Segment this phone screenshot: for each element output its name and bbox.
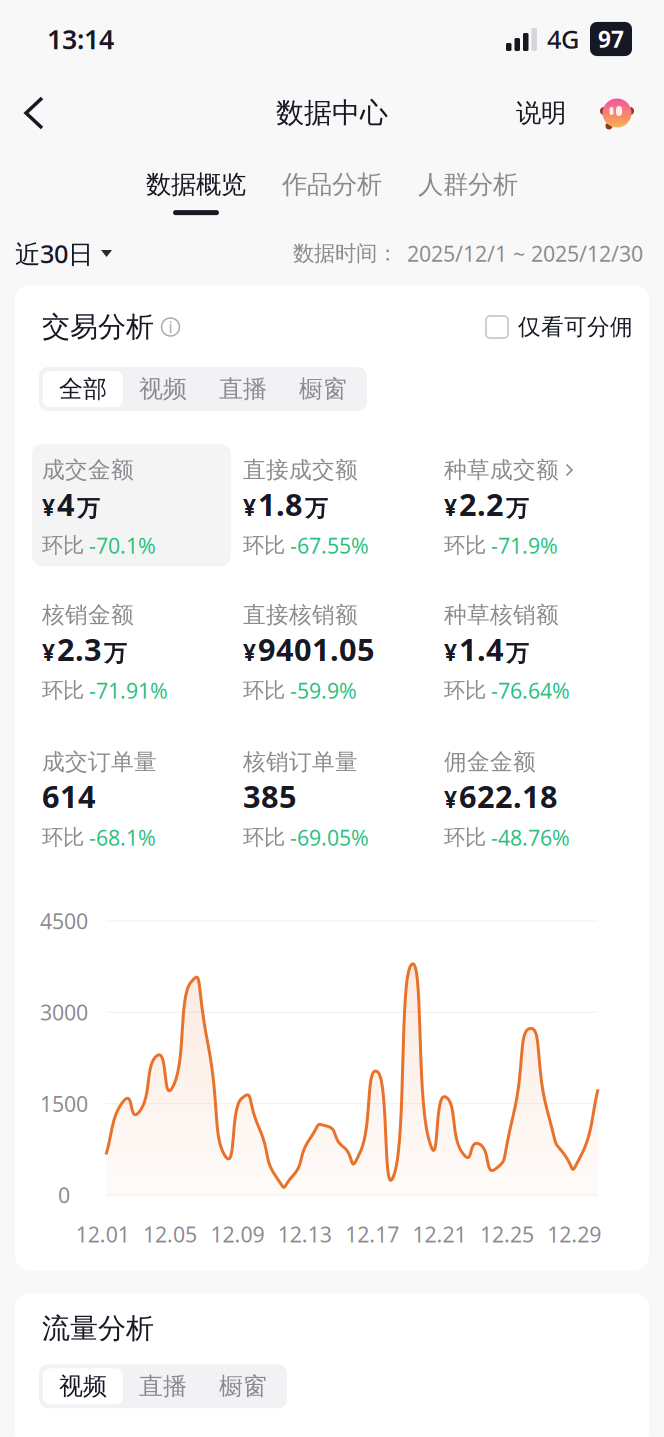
staticText: 97 bbox=[598, 24, 624, 54]
button[interactable]: 橱窗 bbox=[203, 1368, 283, 1404]
staticText: 622.18 bbox=[459, 776, 558, 816]
staticText: 直接核销额 bbox=[243, 601, 358, 629]
button[interactable]: 直播 bbox=[123, 1368, 203, 1404]
staticText: 视频 bbox=[139, 374, 187, 404]
staticText: 12.05 bbox=[143, 1220, 197, 1248]
staticText: 万 bbox=[305, 494, 328, 522]
staticText: 12.29 bbox=[547, 1220, 601, 1248]
staticText: ¥ bbox=[444, 492, 457, 522]
button[interactable]: 说明 bbox=[516, 86, 566, 139]
staticText: 9401.05 bbox=[258, 629, 375, 669]
staticText: 614 bbox=[42, 776, 96, 816]
staticText: -70.1% bbox=[89, 531, 156, 560]
staticText: 直播 bbox=[139, 1372, 187, 1401]
staticText: 作品分析 bbox=[282, 169, 382, 200]
staticText: 12.01 bbox=[76, 1220, 130, 1248]
staticText: 385 bbox=[243, 776, 297, 816]
staticText: 交易分析 bbox=[42, 310, 154, 344]
staticText: 橱窗 bbox=[299, 374, 347, 404]
staticText: 2025/12/1 ~ 2025/12/30 bbox=[407, 239, 643, 268]
staticText: 1.8 bbox=[258, 484, 303, 524]
staticText: 成交订单量 bbox=[42, 748, 157, 776]
staticText: ¥ bbox=[243, 492, 256, 522]
staticText: 12.25 bbox=[480, 1220, 534, 1248]
staticText: 环比 bbox=[243, 824, 285, 851]
button[interactable]: 近30日 bbox=[15, 228, 112, 279]
staticText: 环比 bbox=[42, 824, 84, 851]
staticText: 全部 bbox=[59, 374, 107, 404]
staticText: -59.9% bbox=[290, 676, 357, 705]
staticText: 2.3 bbox=[57, 629, 102, 669]
staticText: 环比 bbox=[444, 824, 486, 851]
staticText: 3000 bbox=[40, 998, 88, 1026]
button[interactable]: 全部 bbox=[43, 371, 123, 407]
staticText: ¥ bbox=[243, 637, 256, 667]
staticText: -67.55% bbox=[290, 531, 369, 560]
staticText: 万 bbox=[506, 639, 529, 667]
staticText: 环比 bbox=[243, 677, 285, 704]
staticText: 种草核销额 bbox=[444, 601, 559, 629]
staticText: 环比 bbox=[444, 677, 486, 704]
staticText: 直接成交额 bbox=[243, 456, 358, 484]
staticText: 0 bbox=[58, 1181, 70, 1209]
staticText: 12.13 bbox=[278, 1220, 332, 1248]
staticText: 万 bbox=[506, 494, 529, 522]
staticText: 直播 bbox=[219, 374, 267, 404]
staticText: -71.91% bbox=[89, 676, 168, 705]
staticText: 流量分析 bbox=[42, 1311, 154, 1345]
staticText: 环比 bbox=[243, 532, 285, 559]
staticText: 种草成交额 bbox=[444, 456, 559, 484]
staticText: 4G bbox=[547, 22, 579, 56]
staticText: -69.05% bbox=[290, 823, 369, 852]
staticText: 4500 bbox=[40, 907, 88, 935]
staticText: 13:14 bbox=[47, 21, 114, 57]
staticText: ¥ bbox=[42, 492, 55, 522]
staticText: ¥ bbox=[444, 784, 457, 814]
staticText: 万 bbox=[104, 639, 127, 667]
staticText: ¥ bbox=[42, 637, 55, 667]
button[interactable]: 仅看可分佣 bbox=[486, 313, 633, 341]
staticText: 数据中心 bbox=[276, 96, 388, 130]
button[interactable]: 数据概览 bbox=[146, 169, 246, 215]
staticText: 佣金金额 bbox=[444, 748, 536, 776]
staticText: 2.2 bbox=[459, 484, 504, 524]
staticText: -76.64% bbox=[491, 676, 570, 705]
button[interactable]: 人群分析 bbox=[418, 169, 518, 215]
staticText: 1.4 bbox=[459, 629, 504, 669]
staticText: 核销订单量 bbox=[243, 748, 358, 776]
button[interactable]: 直播 bbox=[203, 371, 283, 407]
staticText: 近30日 bbox=[15, 237, 93, 270]
button[interactable]: 视频 bbox=[123, 371, 203, 407]
staticText: 数据概览 bbox=[146, 169, 246, 200]
staticText: -71.9% bbox=[491, 531, 558, 560]
staticText: 环比 bbox=[42, 677, 84, 704]
staticText: 4 bbox=[57, 484, 75, 524]
button[interactable]: Profile bbox=[600, 96, 634, 130]
staticText: 橱窗 bbox=[219, 1372, 267, 1401]
staticText: 环比 bbox=[444, 532, 486, 559]
button[interactable]: 视频 bbox=[43, 1368, 123, 1404]
staticText: 核销金额 bbox=[42, 601, 134, 629]
staticText: 1500 bbox=[40, 1089, 88, 1118]
staticText: -48.76% bbox=[491, 823, 570, 852]
button[interactable]: 作品分析 bbox=[282, 169, 382, 215]
staticText: 成交金额 bbox=[42, 456, 134, 484]
staticText: 12.17 bbox=[345, 1220, 399, 1248]
staticText: 人群分析 bbox=[418, 169, 518, 200]
staticText: i bbox=[168, 316, 172, 338]
staticText: 12.21 bbox=[413, 1220, 467, 1248]
staticText: 12.09 bbox=[210, 1220, 264, 1248]
staticText: 环比 bbox=[42, 532, 84, 559]
button[interactable]: 橱窗 bbox=[283, 371, 363, 407]
staticText: 说明 bbox=[516, 97, 566, 128]
staticText: 视频 bbox=[59, 1372, 107, 1401]
staticText: -68.1% bbox=[89, 823, 156, 852]
staticText: ¥ bbox=[444, 637, 457, 667]
button[interactable]: Back bbox=[12, 90, 58, 136]
staticText: 仅看可分佣 bbox=[518, 313, 633, 341]
staticText: 万 bbox=[77, 494, 100, 522]
staticText: 数据时间： bbox=[293, 240, 398, 267]
